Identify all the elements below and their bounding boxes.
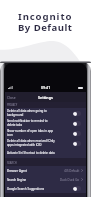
staticText: Incognito — [18, 10, 73, 23]
button[interactable]: Delete all data when going to background — [5, 108, 86, 118]
staticText: Show number of open tabs in app icon — [7, 129, 55, 137]
button[interactable]: Delete all data when received (Only apps… — [5, 138, 86, 148]
staticText: Browser Agent — [7, 169, 55, 173]
button[interactable]: Google Search Suggestions — [5, 184, 86, 193]
staticText: Delete all data when going to background — [7, 109, 55, 117]
button[interactable]: Send notification to remind to delete ta… — [5, 118, 86, 128]
staticText: Search Engine — [7, 178, 55, 182]
button[interactable]: Search Engine — [5, 175, 86, 184]
staticText: PRIVACY — [7, 103, 18, 107]
button[interactable]: Browser Agent — [5, 166, 86, 175]
button[interactable]: Close — [5, 94, 18, 101]
staticText: Activate Siri Shortcut to delete data — [7, 151, 55, 155]
staticText: By Default — [18, 21, 73, 34]
staticText: SEARCH — [7, 161, 17, 165]
staticText: Delete all data when received (Only apps… — [7, 139, 55, 147]
button[interactable]: Activate Siri Shortcut to delete data — [5, 148, 86, 158]
button[interactable]: Show number of open tabs in app icon — [5, 128, 86, 138]
staticText: iOS Default — [64, 169, 80, 173]
staticText: Settings — [38, 95, 53, 100]
staticText: Send notification to remind to delete ta… — [7, 119, 55, 127]
staticText: 09:41 — [41, 85, 51, 90]
staticText: Google Search Suggestions — [7, 187, 55, 191]
staticText: Duck Duck Go — [60, 178, 80, 182]
